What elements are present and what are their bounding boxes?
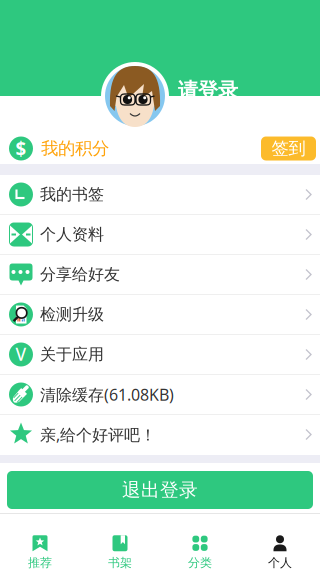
staticText: 签到 xyxy=(271,138,305,159)
button[interactable]: 书架 xyxy=(80,514,160,576)
staticText: 分类 xyxy=(188,555,212,570)
staticText: $ xyxy=(15,136,26,161)
staticText: 关于应用 xyxy=(40,345,104,364)
staticText: 推荐 xyxy=(28,555,52,570)
staticText: 检测升级 xyxy=(40,305,104,324)
staticText: 分享给好友 xyxy=(40,265,120,284)
button[interactable]: 签到 xyxy=(261,136,316,160)
button[interactable]: V xyxy=(0,335,320,375)
staticText: 我的书签 xyxy=(40,185,104,204)
button[interactable]: 我的书签 xyxy=(0,175,320,215)
staticText: 个人 xyxy=(268,555,292,570)
button[interactable]: 个人 xyxy=(240,514,320,576)
button[interactable]: 清除缓存(61.08KB) xyxy=(0,375,320,415)
staticText: 书架 xyxy=(108,555,132,570)
staticText: 请登录 xyxy=(178,78,238,103)
button[interactable]: 分类 xyxy=(160,514,240,576)
button[interactable]: 退出登录 xyxy=(7,471,313,509)
staticText: 清除缓存(61.08KB) xyxy=(40,384,174,405)
staticText: 个人资料 xyxy=(40,225,104,244)
button[interactable]: 个人资料 xyxy=(0,215,320,255)
button[interactable]: 分享给好友 xyxy=(0,255,320,295)
staticText: 亲,给个好评吧！ xyxy=(40,424,156,445)
staticText: 退出登录 xyxy=(122,478,198,501)
staticText: 我的积分 xyxy=(41,138,109,159)
staticText: V xyxy=(15,342,26,365)
button[interactable]: 亲,给个好评吧！ xyxy=(0,415,320,455)
button[interactable]: 推荐 xyxy=(0,514,80,576)
button[interactable]: 检测升级 xyxy=(0,295,320,335)
